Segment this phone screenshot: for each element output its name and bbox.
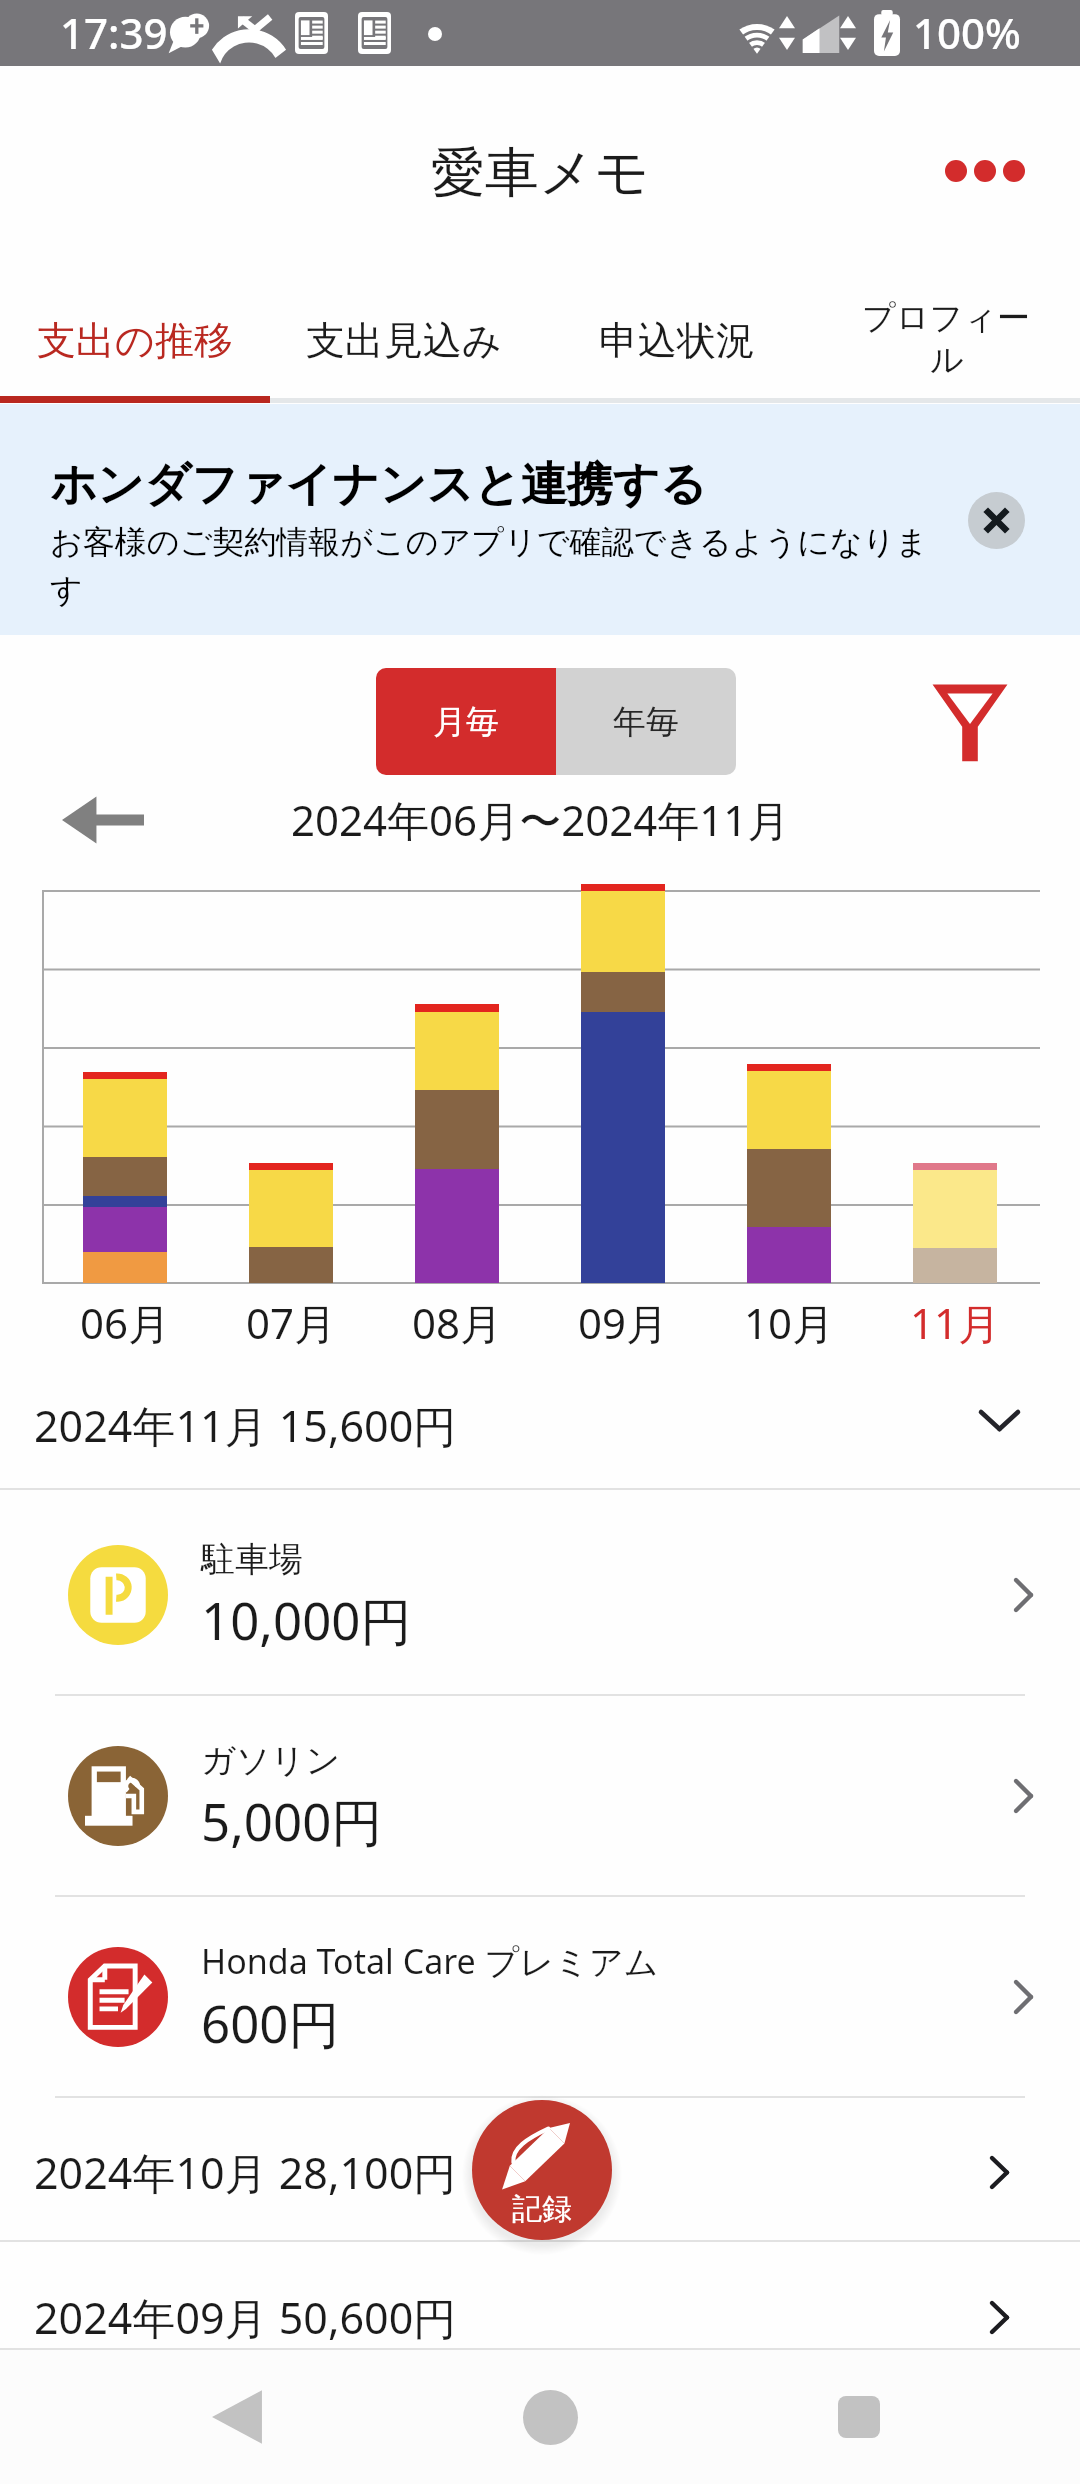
staticText: 10月 <box>744 1294 835 1351</box>
button[interactable]: Record <box>472 2100 612 2240</box>
staticText: ガソリン <box>201 1739 341 1782</box>
staticText: 100% <box>913 4 1021 61</box>
staticText: 月毎 <box>433 701 499 743</box>
staticText: 600円 <box>201 1988 340 2058</box>
button[interactable]: 駐車場 <box>0 1497 1080 1693</box>
button[interactable]: 2024年11月 15,600円 <box>0 1366 1080 1484</box>
button[interactable]: 支出見込み <box>270 250 538 406</box>
staticText: 5,000円 <box>201 1786 383 1856</box>
button[interactable]: 支出の推移 <box>1 250 269 406</box>
staticText: 2024年06月〜2024年11月 <box>291 791 790 848</box>
staticText: 申込状況 <box>599 316 755 365</box>
staticText: ル <box>930 339 964 381</box>
staticText: 09月 <box>578 1294 669 1351</box>
button[interactable]: Recent apps <box>804 2362 914 2472</box>
staticText: お客様のご契約情報がこのアプリで確認できるようになります <box>50 522 940 610</box>
staticText: 記録 <box>512 2190 572 2228</box>
staticText: Honda Total Care プレミアム <box>201 1938 659 1984</box>
staticText: 10,000円 <box>201 1585 412 1655</box>
staticText: 2024年11月 15,600円 <box>34 1396 457 1455</box>
staticText: ホンダファイナンスと連携する <box>50 456 707 514</box>
button[interactable]: 月毎 <box>376 668 556 775</box>
staticText: 17:39 <box>60 4 168 61</box>
button[interactable]: 年毎 <box>556 668 736 775</box>
staticText: 年毎 <box>613 701 679 743</box>
button[interactable]: Home <box>495 2362 605 2472</box>
button[interactable]: 申込状況 <box>543 250 811 406</box>
staticText: プロフィー <box>862 297 1031 339</box>
staticText: 支出の推移 <box>37 316 233 365</box>
staticText: 支出見込み <box>306 316 502 365</box>
button[interactable]: 2024年10月 28,100円 <box>0 2103 1080 2241</box>
staticText: 2024年10月 28,100円 <box>34 2143 457 2202</box>
staticText: 06月 <box>80 1294 171 1351</box>
staticText: 2024年09月 50,600円 <box>34 2288 457 2347</box>
staticText: 11月 <box>910 1294 1001 1351</box>
staticText: 駐車場 <box>201 1538 303 1581</box>
button[interactable]: Previous period <box>48 775 158 865</box>
staticText: 08月 <box>412 1294 503 1351</box>
staticText: 07月 <box>246 1294 337 1351</box>
button[interactable]: Filter <box>910 662 1030 782</box>
button[interactable]: プロフィー <box>812 250 1080 406</box>
button[interactable]: Honda Total Care プレミアム <box>0 1899 1080 2095</box>
staticText: 愛車メモ <box>431 139 650 207</box>
button[interactable]: More options <box>930 128 1040 214</box>
button[interactable]: Close banner <box>968 492 1025 549</box>
button[interactable]: Back <box>182 2362 292 2472</box>
button[interactable]: ガソリン <box>0 1698 1080 1894</box>
button[interactable]: 2024年09月 50,600円 <box>0 2248 1080 2386</box>
